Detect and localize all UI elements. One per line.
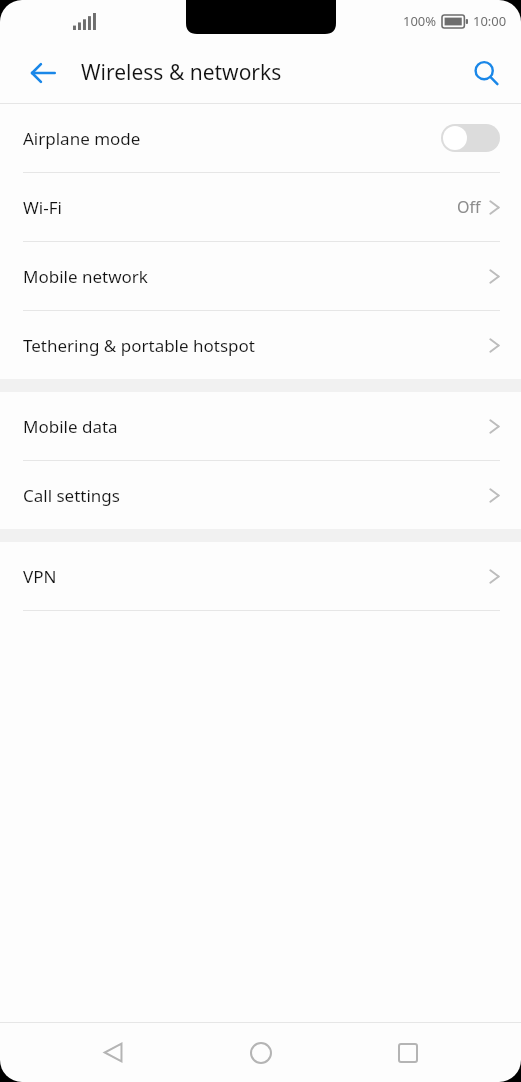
staticText: VPN [23, 565, 489, 588]
staticText: 10:00 [473, 12, 507, 30]
button[interactable]: Home [227, 1023, 295, 1082]
button[interactable]: Airplane mode toggle [441, 124, 500, 152]
button[interactable]: VPN [0, 542, 521, 610]
button[interactable]: Mobile data [0, 392, 521, 460]
button[interactable]: Search [463, 50, 509, 96]
button[interactable]: Airplane mode [0, 104, 521, 172]
button[interactable]: Call settings [0, 461, 521, 529]
button[interactable]: Back [79, 1023, 147, 1082]
button[interactable]: Wi-Fi [0, 173, 521, 241]
staticText: 100% [403, 12, 437, 30]
button[interactable]: Tethering & portable hotspot [0, 311, 521, 379]
button[interactable]: Mobile network [0, 242, 521, 310]
staticText: Call settings [23, 484, 489, 507]
staticText: Mobile data [23, 415, 489, 438]
button[interactable]: Back [20, 50, 66, 96]
staticText: Wi-Fi [23, 196, 457, 219]
button[interactable]: Recent apps [374, 1023, 442, 1082]
staticText: Mobile network [23, 265, 489, 288]
staticText: Off [457, 196, 481, 218]
staticText: Airplane mode [23, 127, 441, 150]
staticText: Wireless & networks [81, 58, 282, 87]
staticText: Tethering & portable hotspot [23, 334, 489, 357]
